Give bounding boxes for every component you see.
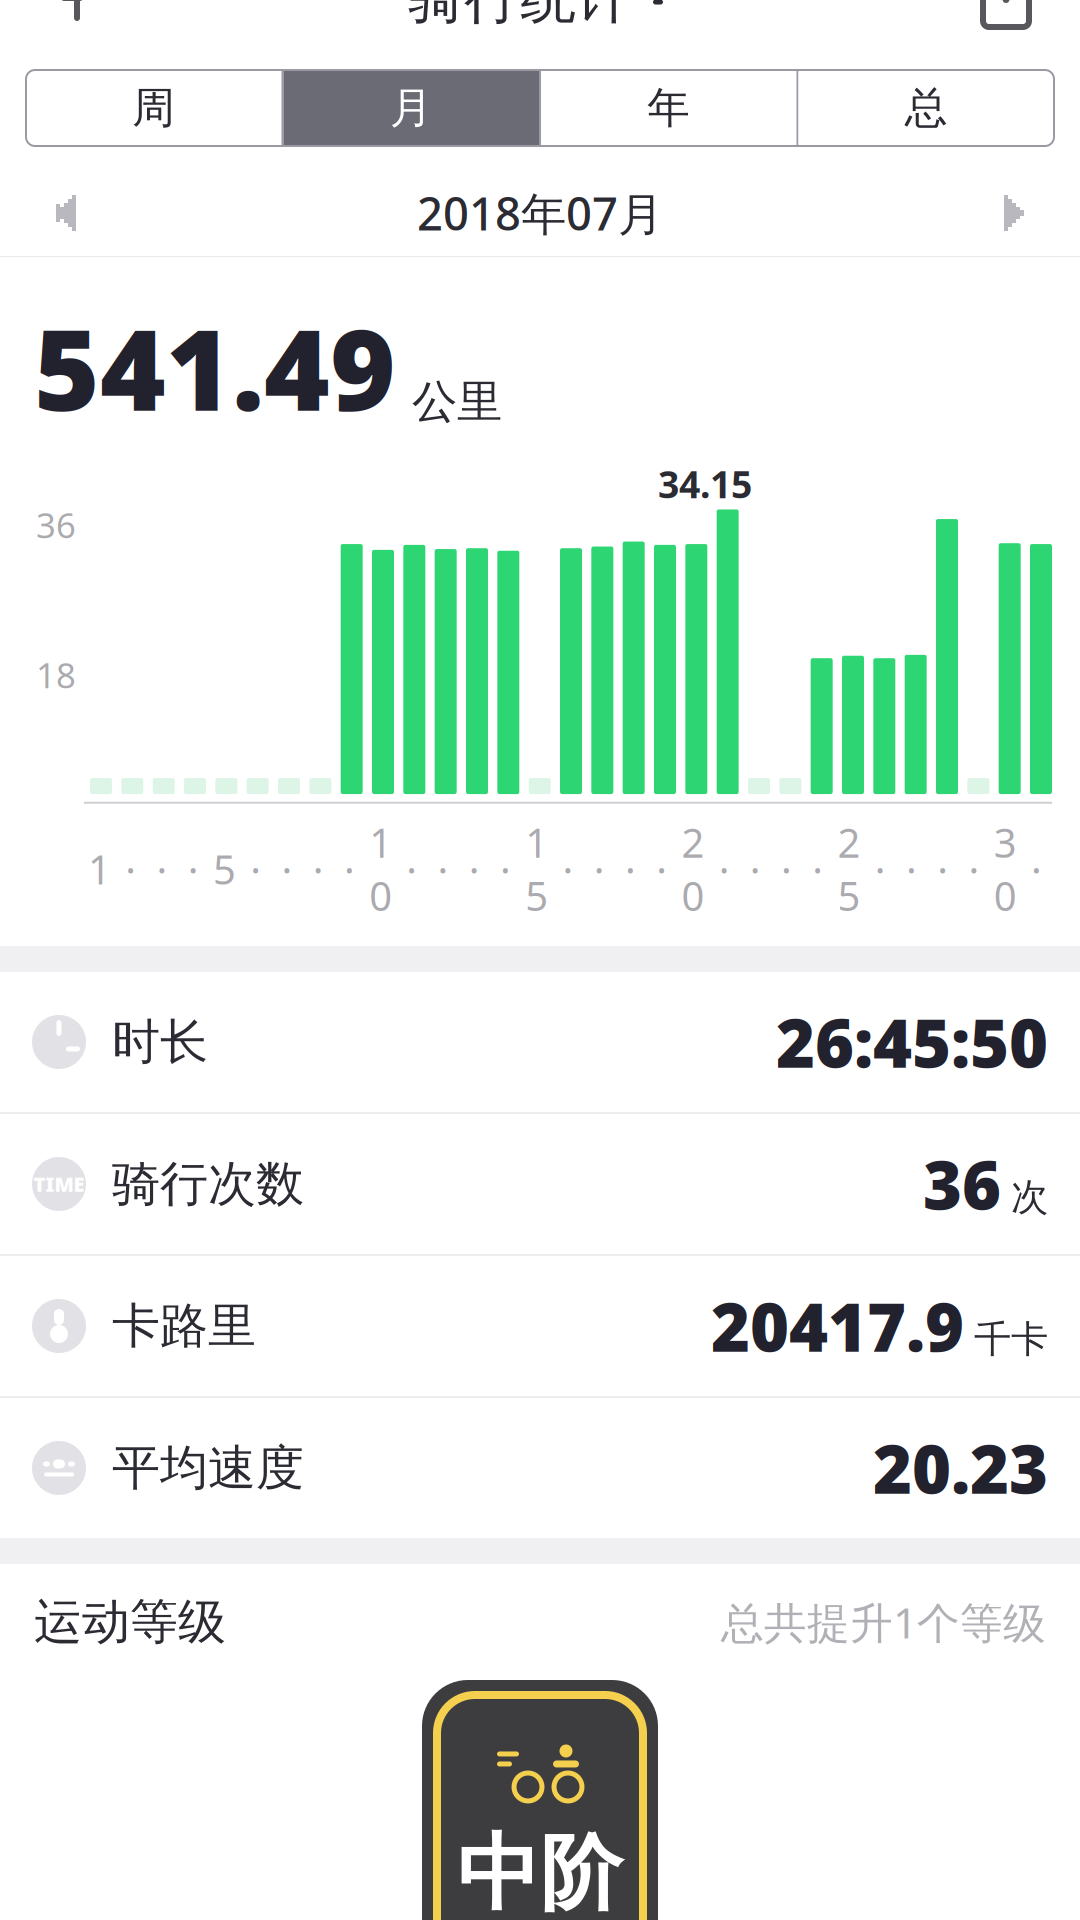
- staticText: 36: [36, 502, 76, 548]
- staticText: 34.15: [658, 459, 752, 509]
- staticText: 26:45:50: [776, 998, 1048, 1086]
- staticText: 15: [525, 816, 548, 922]
- staticText: 10: [369, 816, 392, 922]
- button[interactable]: 时长: [0, 972, 1080, 1112]
- staticText: ·: [406, 842, 417, 895]
- staticText: ·: [781, 842, 792, 895]
- staticText: 541.49: [34, 293, 396, 442]
- staticText: 2018年07月: [417, 183, 663, 243]
- staticText: TIME: [33, 1171, 84, 1197]
- staticText: 千卡: [974, 1316, 1048, 1362]
- button[interactable]: TIME: [0, 1114, 1080, 1254]
- staticText: 25: [837, 816, 860, 922]
- staticText: ·: [344, 842, 355, 895]
- staticText: 20417.9: [711, 1282, 964, 1370]
- button[interactable]: 卡路里: [0, 1256, 1080, 1396]
- staticText: ·: [250, 842, 261, 895]
- staticText: ·: [500, 842, 511, 895]
- staticText: ·: [1031, 842, 1042, 895]
- staticText: 总: [905, 82, 948, 134]
- staticText: ·: [562, 842, 573, 895]
- staticText: 18: [36, 652, 76, 698]
- button[interactable]: 总: [798, 70, 1054, 146]
- staticText: 运动等级: [34, 1592, 226, 1651]
- staticText: 36: [923, 1140, 1001, 1228]
- staticText: ·: [625, 842, 636, 895]
- staticText: 20.23: [873, 1424, 1048, 1512]
- staticText: 平均速度: [112, 1438, 304, 1497]
- staticText: ·: [812, 842, 823, 895]
- button[interactable]: 年: [541, 70, 796, 146]
- staticText: 卡路里: [112, 1296, 256, 1355]
- button[interactable]: 月: [283, 70, 539, 146]
- staticText: ·: [157, 842, 168, 895]
- staticText: 时长: [112, 1012, 208, 1071]
- button[interactable]: 分享: [946, 0, 1066, 48]
- staticText: 骑行次数: [112, 1154, 304, 1213]
- staticText: ·: [906, 842, 917, 895]
- staticText: ·: [968, 842, 979, 895]
- staticText: 公里: [412, 374, 502, 430]
- staticText: 1: [88, 842, 111, 895]
- staticText: 5: [213, 842, 236, 895]
- staticText: 中阶: [457, 1823, 623, 1920]
- button[interactable]: 上个月: [18, 177, 114, 249]
- staticText: 次: [1011, 1174, 1048, 1220]
- staticText: ·: [125, 842, 136, 895]
- staticText: 30: [994, 816, 1017, 922]
- staticText: 年: [647, 82, 690, 134]
- button[interactable]: 返回: [14, 0, 134, 48]
- staticText: ·: [937, 842, 948, 895]
- button[interactable]: 下个月: [966, 177, 1062, 249]
- staticText: 月: [390, 82, 433, 134]
- staticText: 周: [132, 82, 175, 134]
- staticText: ·: [875, 842, 886, 895]
- staticText: ·: [313, 842, 324, 895]
- staticText: ·: [594, 842, 605, 895]
- button[interactable]: 平均速度: [0, 1398, 1080, 1538]
- staticText: ·: [188, 842, 199, 895]
- staticText: ·: [750, 842, 761, 895]
- staticText: 骑行统计: [408, 0, 632, 32]
- staticText: ·: [719, 842, 730, 895]
- staticText: ·: [656, 842, 667, 895]
- button[interactable]: 周: [26, 70, 281, 146]
- staticText: ·: [281, 842, 292, 895]
- staticText: ·: [438, 842, 449, 895]
- staticText: 20: [681, 816, 704, 922]
- staticText: ·: [469, 842, 480, 895]
- staticText: 总共提升1个等级: [721, 1594, 1046, 1650]
